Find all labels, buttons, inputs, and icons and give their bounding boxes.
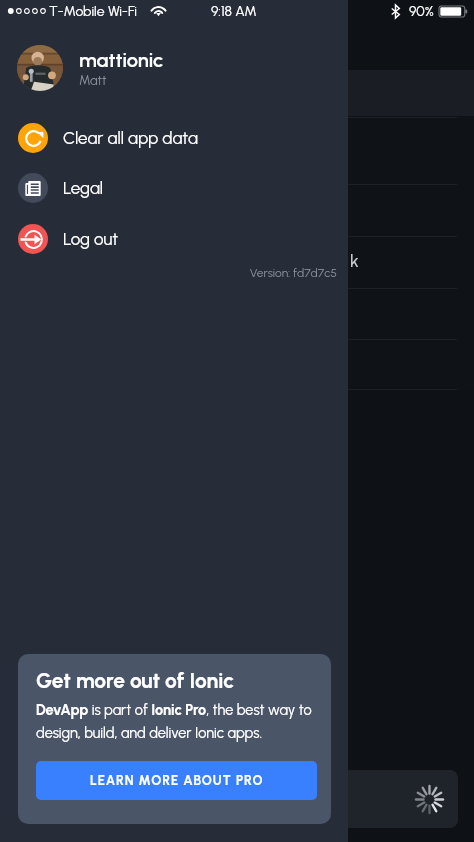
staticText: 9:18 AM bbox=[211, 3, 257, 20]
staticText: LEARN MORE ABOUT PRO bbox=[90, 773, 264, 789]
button[interactable]: Log out bbox=[0, 219, 348, 259]
staticText: Version: fd7d7c5 bbox=[0, 266, 337, 280]
staticText: Legal bbox=[63, 178, 104, 198]
other: Clear all app data bbox=[23, 128, 44, 149]
staticText: mattionic bbox=[79, 48, 164, 72]
staticText: k bbox=[350, 250, 359, 272]
button[interactable]: LEARN MORE ABOUT PRO bbox=[36, 761, 317, 800]
staticText: Clear all app data bbox=[63, 128, 198, 148]
button[interactable]: Legal bbox=[0, 168, 348, 208]
staticText: Log out bbox=[63, 229, 119, 249]
button[interactable]: mattionic bbox=[0, 37, 348, 99]
other: Log out bbox=[23, 229, 44, 250]
staticText: 90% bbox=[409, 3, 434, 20]
staticText: Matt bbox=[79, 73, 107, 89]
staticText: T-Mobile Wi-Fi bbox=[49, 3, 137, 20]
staticText: DevApp is part of Ionic Pro, the best wa… bbox=[36, 701, 317, 742]
staticText: Get more out of Ionic bbox=[36, 668, 234, 693]
button[interactable]: Clear all app data bbox=[0, 118, 348, 158]
other: Legal bbox=[25, 180, 41, 196]
